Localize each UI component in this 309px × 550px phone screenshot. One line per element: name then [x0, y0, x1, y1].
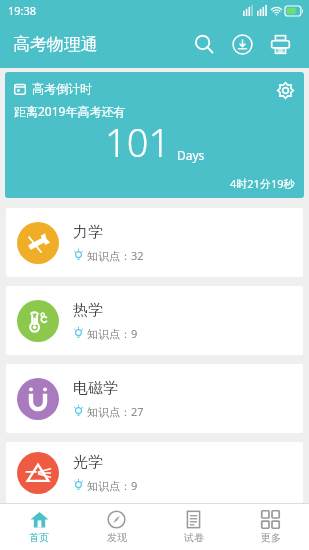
staticText: 高考倒计时	[32, 81, 92, 96]
staticText: 19:38	[8, 3, 37, 18]
staticText: 光学	[73, 453, 103, 472]
staticText: 首页	[29, 531, 49, 544]
staticText: 4时21分19秒	[230, 176, 295, 191]
staticText: 力学	[73, 223, 103, 242]
button[interactable]: 电磁学	[6, 364, 303, 433]
button[interactable]: Print	[261, 25, 299, 63]
button[interactable]: Settings	[272, 77, 298, 103]
button[interactable]: 首页	[0, 504, 78, 550]
button[interactable]: Search	[185, 25, 223, 63]
staticText: 知识点：32	[87, 248, 144, 263]
staticText: 热学	[73, 301, 103, 320]
button[interactable]: Download	[223, 25, 261, 63]
staticText: 101	[105, 116, 171, 168]
staticText: 知识点：9	[87, 326, 138, 341]
button[interactable]: 高考倒计时	[5, 72, 304, 198]
button[interactable]: 试卷	[155, 504, 232, 550]
staticText: Days	[177, 147, 205, 163]
staticText: 电磁学	[73, 379, 118, 398]
staticText: 高考物理通	[13, 34, 98, 55]
button[interactable]: 光学	[6, 442, 303, 503]
staticText: 距离2019年高考还有	[14, 103, 126, 119]
staticText: 试卷	[184, 531, 204, 544]
staticText: 更多	[261, 531, 281, 544]
button[interactable]: 更多	[232, 504, 309, 550]
button[interactable]: 发现	[78, 504, 155, 550]
button[interactable]: 热学	[6, 286, 303, 355]
staticText: 知识点：27	[87, 404, 144, 419]
button[interactable]: 力学	[6, 208, 303, 277]
staticText: 知识点：9	[87, 478, 138, 493]
staticText: 发现	[107, 531, 127, 544]
